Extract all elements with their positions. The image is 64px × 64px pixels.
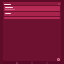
button[interactable]: More options: [3, 2, 61, 5]
button[interactable]: [4, 12, 60, 16]
button[interactable]: Add: [57, 58, 60, 61]
button[interactable]: [4, 6, 60, 11]
button[interactable]: Home: [16, 62, 18, 64]
